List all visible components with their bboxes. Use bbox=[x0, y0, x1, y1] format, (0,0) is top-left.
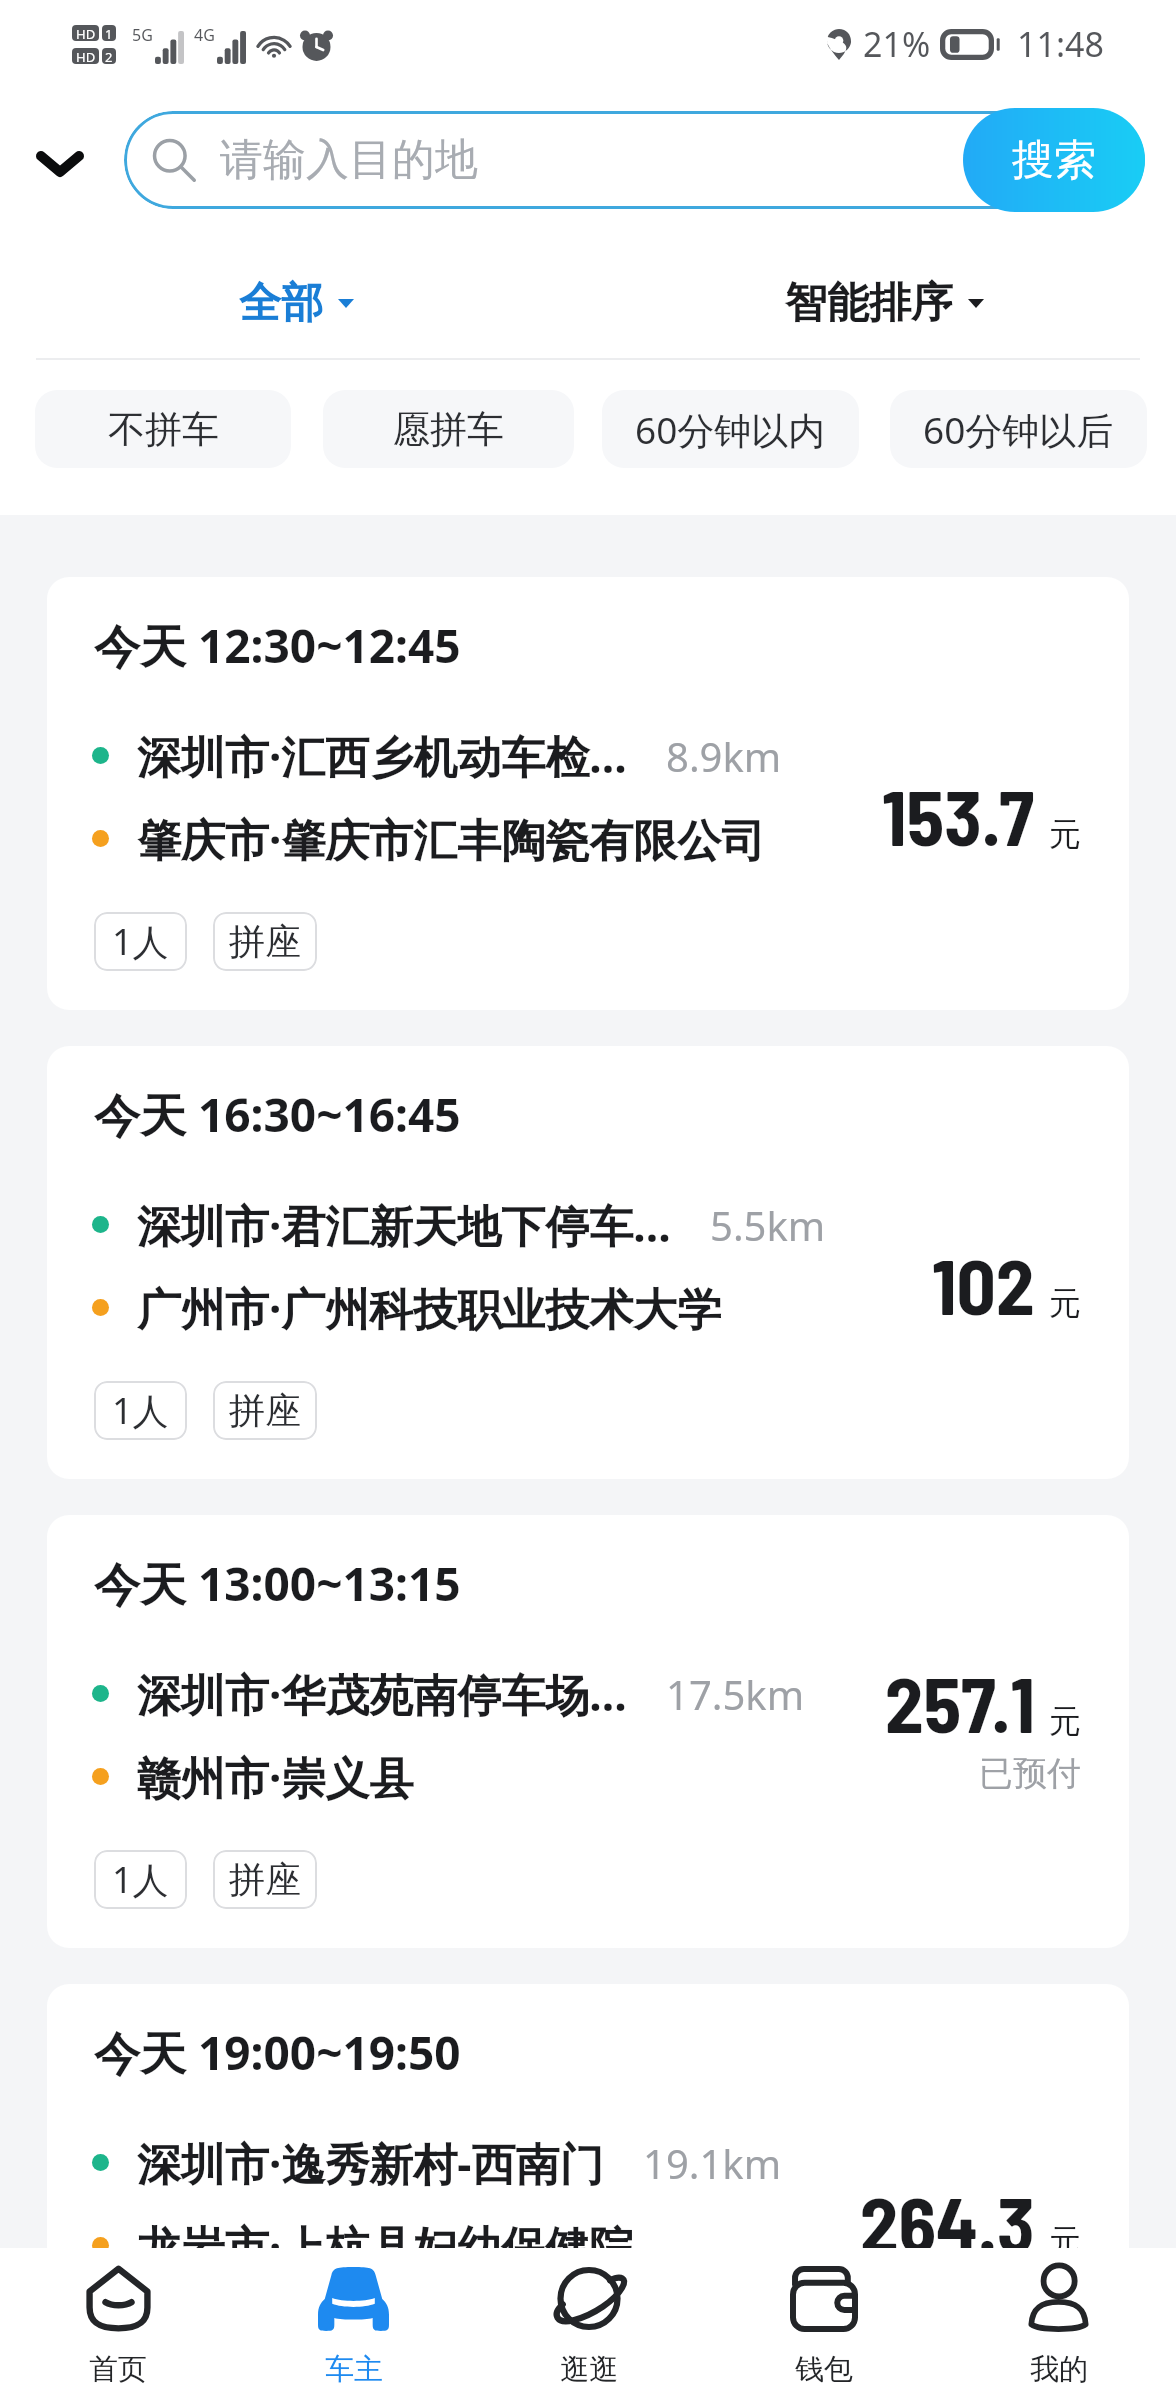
button[interactable]: 今天 13:00~13:15 bbox=[47, 1515, 1129, 1948]
staticText: 60分钟以后 bbox=[923, 404, 1114, 455]
staticText: 4G bbox=[194, 24, 215, 46]
button[interactable]: 收起 bbox=[21, 125, 99, 203]
staticText: 1人 bbox=[112, 917, 169, 966]
staticText: 153.7 bbox=[882, 769, 1035, 861]
button[interactable]: 我的 bbox=[941, 2248, 1176, 2400]
button[interactable]: 全部 bbox=[239, 277, 354, 330]
staticText: 首页 bbox=[89, 2351, 147, 2388]
staticText: 19.1km bbox=[643, 2136, 782, 2190]
staticText: 深圳市·汇西乡机动车检… bbox=[137, 726, 627, 786]
staticText: 元 bbox=[1049, 2221, 1081, 2261]
staticText: 11:48 bbox=[1017, 21, 1104, 67]
staticText: 钱包 bbox=[795, 2351, 853, 2388]
staticText: 264.3 bbox=[860, 2176, 1035, 2268]
button[interactable]: 请输入目的地 bbox=[124, 111, 1145, 209]
button[interactable]: 愿拼车 bbox=[323, 390, 574, 468]
staticText: 今天 19:00~19:50 bbox=[94, 2021, 461, 2084]
staticText: 智能排序 bbox=[785, 277, 953, 330]
staticText: 车主 bbox=[325, 2351, 383, 2388]
staticText: 1人 bbox=[112, 1855, 169, 1904]
staticText: 逛逛 bbox=[560, 2351, 618, 2388]
button[interactable]: 今天 19:00~19:50 bbox=[47, 1984, 1129, 2400]
staticText: 5.5km bbox=[710, 1198, 826, 1252]
staticText: 搜索 bbox=[1012, 134, 1096, 187]
button[interactable]: 逛逛 bbox=[471, 2248, 706, 2400]
staticText: 赣州市·崇义县 bbox=[137, 1747, 414, 1807]
button[interactable]: 60分钟以后 bbox=[890, 390, 1147, 468]
staticText: 今天 16:30~16:45 bbox=[94, 1083, 461, 1146]
staticText: 5G bbox=[132, 24, 153, 46]
staticText: 肇庆市·肇庆市汇丰陶瓷有限公司 bbox=[137, 809, 766, 869]
button[interactable]: 钱包 bbox=[706, 2248, 941, 2400]
staticText: HD bbox=[76, 48, 96, 64]
button[interactable]: 60分钟以内 bbox=[602, 390, 859, 468]
staticText: 不拼车 bbox=[108, 406, 219, 453]
button[interactable]: 车主 bbox=[236, 2248, 471, 2400]
staticText: 今天 13:00~13:15 bbox=[94, 1552, 461, 1615]
staticText: 全部 bbox=[239, 277, 323, 330]
button[interactable]: 搜索 bbox=[963, 108, 1145, 212]
button[interactable]: 智能排序 bbox=[785, 277, 984, 330]
staticText: 1人 bbox=[112, 2324, 169, 2373]
staticText: 请输入目的地 bbox=[220, 133, 478, 187]
staticText: 102 bbox=[932, 1238, 1035, 1330]
staticText: 深圳市·君汇新天地下停车… bbox=[137, 1195, 671, 1255]
staticText: 深圳市·逸秀新村-西南门 bbox=[137, 2133, 604, 2193]
staticText: 龙岩市·上杭县妇幼保健院 bbox=[137, 2216, 634, 2276]
staticText: 8.9km bbox=[666, 729, 782, 783]
button[interactable]: 不拼车 bbox=[35, 390, 291, 468]
staticText: 21% bbox=[863, 21, 931, 67]
button[interactable]: 首页 bbox=[0, 2248, 236, 2400]
staticText: 元 bbox=[1049, 1701, 1081, 1741]
staticText: 广州市·广州科技职业技术大学 bbox=[137, 1278, 722, 1338]
staticText: 已预付 bbox=[979, 1752, 1081, 1795]
staticText: 拼座 bbox=[229, 1857, 301, 1902]
staticText: 拼座 bbox=[229, 919, 301, 964]
staticText: 拼座 bbox=[229, 1388, 301, 1433]
staticText: 元 bbox=[1049, 1283, 1081, 1323]
button[interactable]: 今天 12:30~12:45 bbox=[47, 577, 1129, 1010]
staticText: 愿拼车 bbox=[393, 406, 504, 453]
staticText: 元 bbox=[1049, 814, 1081, 854]
staticText: 1 bbox=[105, 25, 113, 41]
staticText: HD bbox=[76, 25, 96, 41]
staticText: 17.5km bbox=[666, 1667, 805, 1721]
staticText: 我的 bbox=[1030, 2351, 1088, 2388]
button[interactable]: 今天 16:30~16:45 bbox=[47, 1046, 1129, 1479]
staticText: 257.1 bbox=[885, 1656, 1035, 1748]
staticText: 深圳市·华茂苑南停车场… bbox=[137, 1664, 627, 1724]
staticText: 今天 12:30~12:45 bbox=[94, 614, 461, 677]
staticText: 60分钟以内 bbox=[635, 404, 826, 455]
staticText: 1人 bbox=[112, 1386, 169, 1435]
staticText: 2 bbox=[105, 48, 113, 64]
